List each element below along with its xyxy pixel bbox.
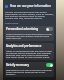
button[interactable]: Learn more: [5, 21, 19, 24]
staticText: Strictly necessary: [6, 63, 45, 67]
button[interactable]: Toggle personalised advertising: [46, 27, 53, 31]
staticText: Required for the app to function correct…: [6, 68, 53, 76]
button[interactable]: Personalised advertising: [5, 26, 54, 41]
staticText: Learn more: [5, 21, 19, 24]
button[interactable]: Toggle strictly necessary: [46, 63, 53, 67]
other: Privacy icon: [5, 5, 8, 8]
staticText: How we use your information: [10, 4, 51, 8]
staticText: Helps us understand how this app is used…: [6, 49, 53, 59]
button[interactable]: Analytics and performance: [5, 43, 54, 60]
button[interactable]: Strictly necessary: [5, 62, 54, 77]
staticText: Analytics and performance: [6, 44, 53, 48]
staticText: We and our partners store and access inf…: [5, 10, 54, 20]
staticText: Personalised advertising: [6, 27, 45, 31]
staticText: Allow partners to show ads based on your…: [6, 32, 53, 40]
button[interactable]: Privacy icon: [5, 4, 54, 8]
